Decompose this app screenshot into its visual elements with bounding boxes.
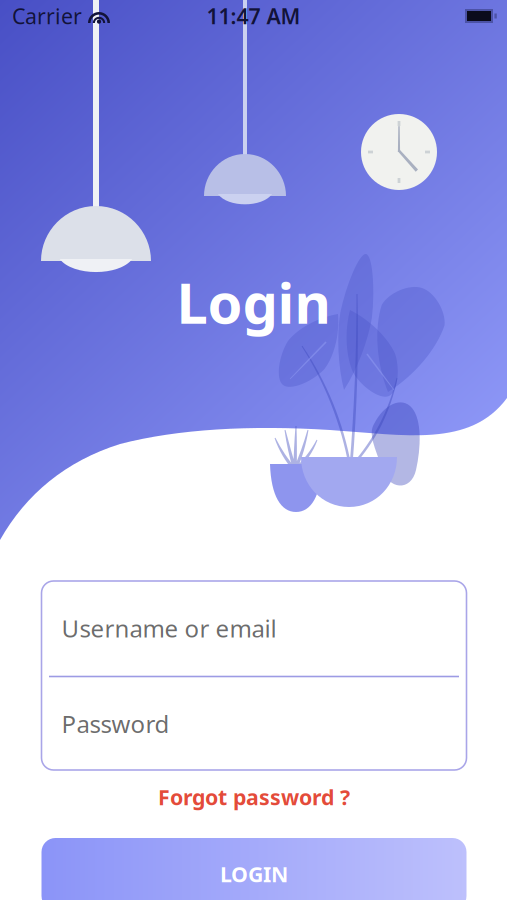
staticText: Forgot password ? bbox=[158, 783, 350, 811]
staticText: Username or email bbox=[61, 612, 276, 644]
staticText: LOGIN bbox=[220, 860, 288, 888]
button[interactable]: Forgot password ? bbox=[142, 775, 366, 819]
staticText: Password bbox=[61, 708, 169, 740]
staticText: 11:47 AM bbox=[206, 2, 300, 30]
staticText: Carrier bbox=[12, 2, 82, 30]
button[interactable]: LOGIN bbox=[41, 838, 466, 900]
staticText: Login bbox=[176, 265, 330, 339]
